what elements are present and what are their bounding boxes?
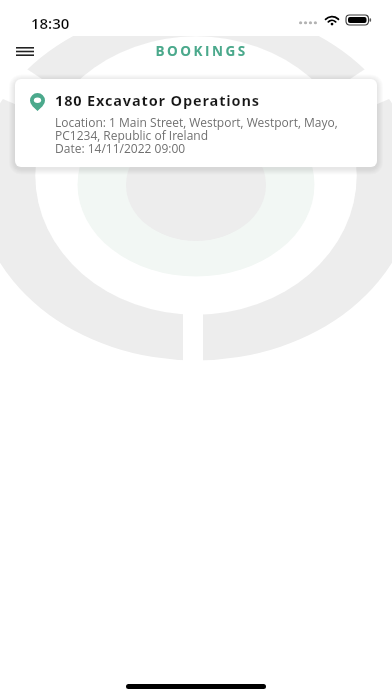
button[interactable]: Menu	[9, 36, 40, 66]
staticText: Location: 1 Main Street, Westport, Westp…	[55, 114, 363, 157]
staticText: 18:30	[31, 13, 70, 33]
button[interactable]: 180 Excavator Operations	[15, 79, 377, 167]
staticText: BOOKINGS	[155, 42, 248, 60]
staticText: 180 Excavator Operations	[55, 91, 260, 111]
